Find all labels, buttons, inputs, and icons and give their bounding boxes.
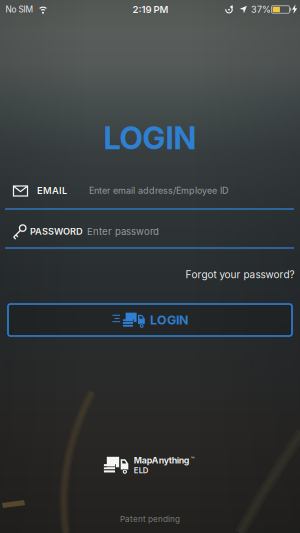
staticText: ™: [191, 456, 195, 463]
staticText: LOGIN: [103, 119, 196, 156]
staticText: 37%: [251, 4, 271, 15]
staticText: 2:19 PM: [132, 4, 168, 15]
staticText: No SIM: [5, 4, 33, 15]
staticText: Forgot your password?: [185, 268, 294, 281]
staticText: Patent pending: [120, 514, 180, 524]
staticText: EMAIL: [37, 185, 67, 196]
button[interactable]: Forgot your password?: [185, 268, 294, 281]
staticText: Enter password: [87, 226, 159, 237]
button[interactable]: Log in: [8, 304, 292, 336]
staticText: ELD: [134, 466, 149, 475]
staticText: PASSWORD: [30, 226, 83, 237]
staticText: Enter email address/Employee ID: [89, 185, 228, 196]
staticText: MapAnything: [134, 455, 190, 466]
staticText: LOGIN: [150, 312, 188, 327]
button[interactable]: Email address or Employee ID: [5, 176, 294, 210]
button[interactable]: Password: [5, 217, 294, 250]
